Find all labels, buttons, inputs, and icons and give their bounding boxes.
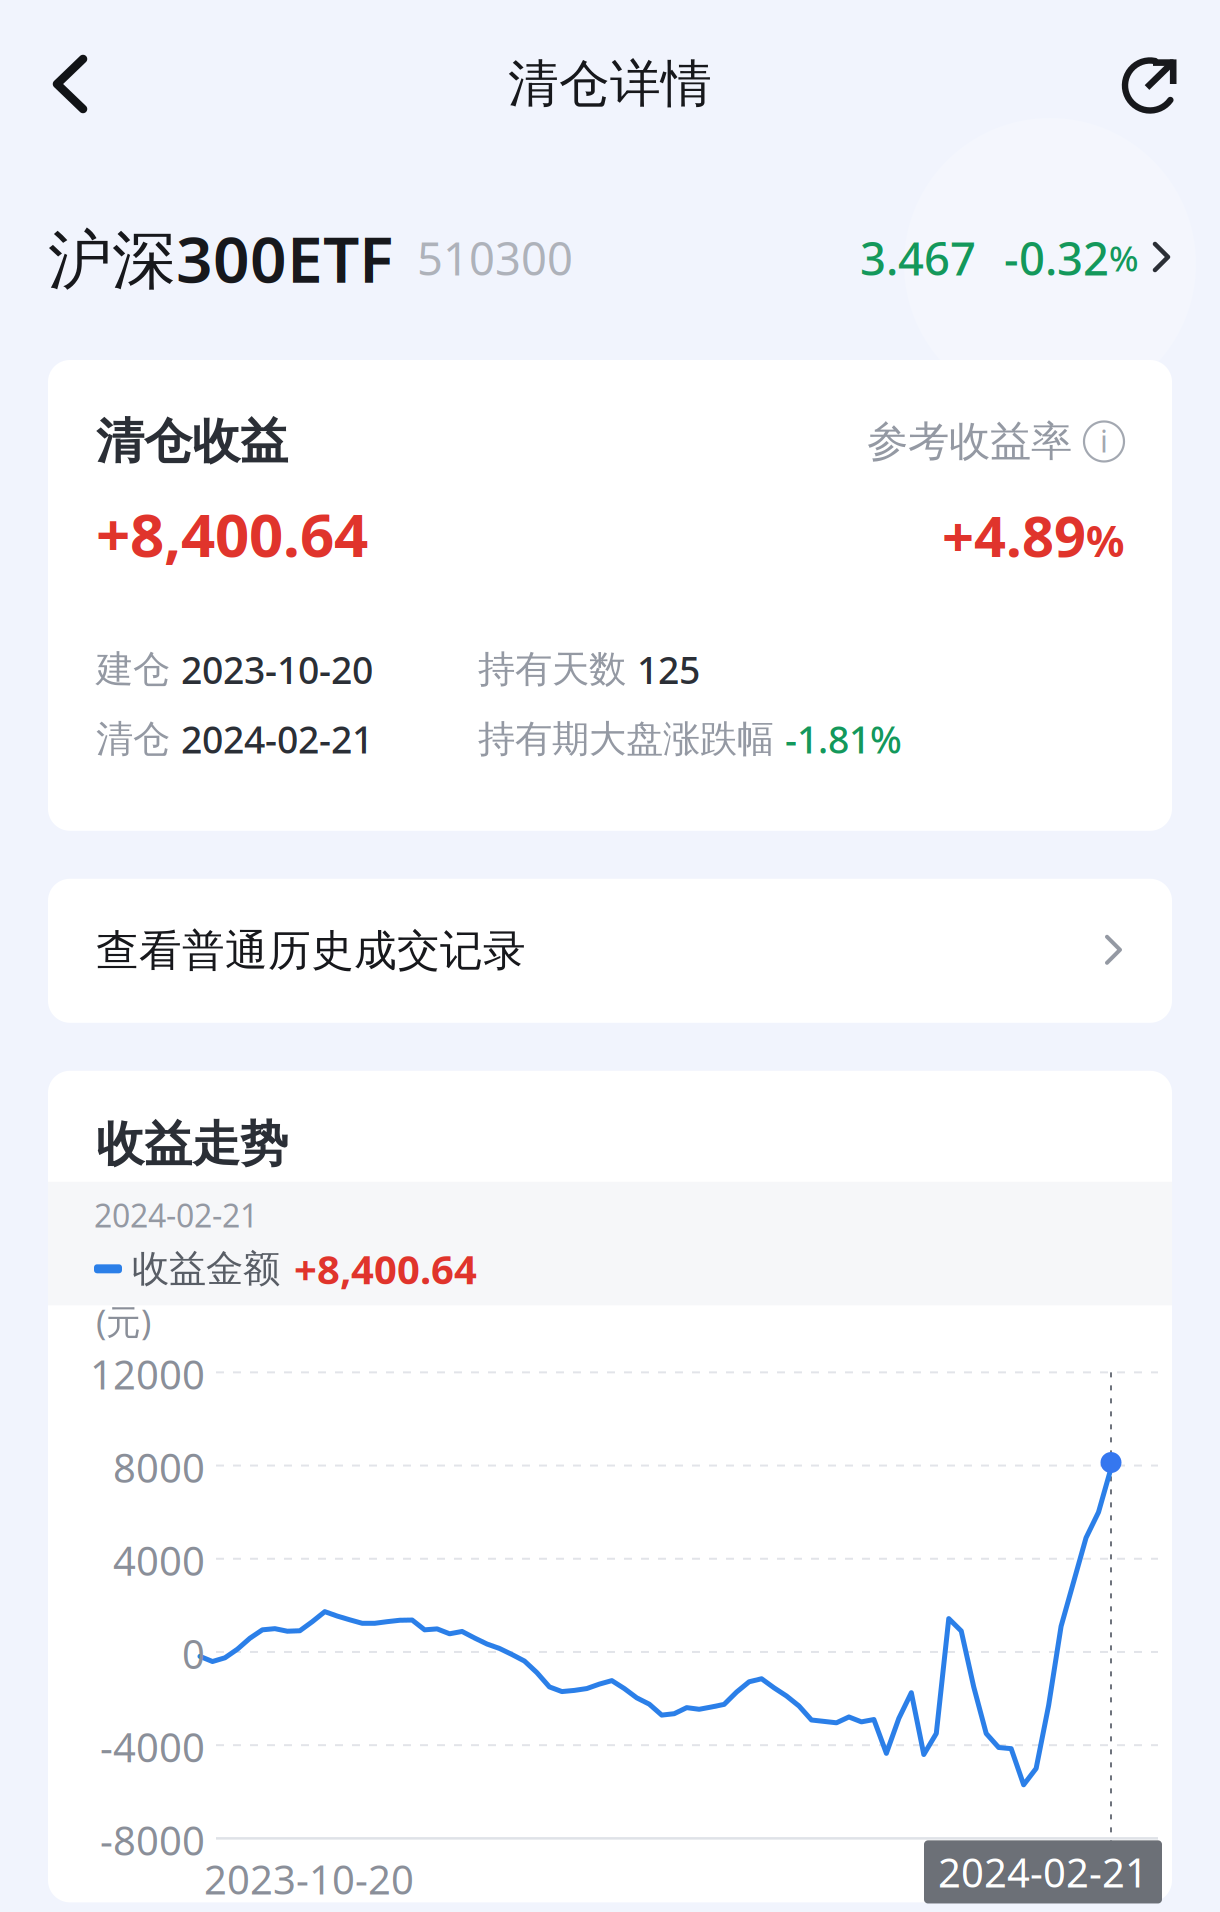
staticText: 清仓详情 — [508, 53, 712, 115]
staticText: -8000 — [100, 1813, 205, 1866]
staticText: i — [1100, 420, 1108, 461]
staticText: 4000 — [113, 1534, 205, 1587]
staticText: 2024-02-21 — [181, 714, 373, 764]
staticText: -1.81% — [785, 714, 902, 764]
staticText: +4.89 — [942, 498, 1086, 573]
staticText: 125 — [637, 645, 700, 694]
staticText: % — [1086, 512, 1124, 569]
staticText: 12000 — [90, 1347, 205, 1400]
staticText: -0.32 — [1004, 228, 1109, 288]
staticText: +8,400.64 — [96, 494, 368, 574]
staticText: 持有天数 — [478, 646, 637, 692]
staticText: 0 — [182, 1627, 205, 1680]
button[interactable]: Share — [1095, 36, 1220, 132]
staticText: 清仓 — [96, 716, 181, 762]
staticText: 查看普通历史成交记录 — [96, 925, 526, 977]
staticText: 建仓 — [96, 646, 181, 692]
staticText: 2024-02-21 — [94, 1194, 258, 1236]
staticText: 2023-10-20 — [181, 645, 373, 694]
staticText: (元) — [96, 1298, 151, 1344]
staticText: 清仓收益 — [96, 412, 288, 471]
staticText: 收益金额 — [132, 1246, 280, 1292]
staticText: 沪深300ETF — [48, 215, 393, 300]
staticText: 收益走势 — [96, 1115, 288, 1174]
staticText: 参考收益率 — [867, 416, 1072, 467]
staticText: % — [1109, 235, 1139, 281]
button[interactable]: Back — [0, 32, 115, 136]
staticText: -4000 — [100, 1720, 205, 1773]
staticText: 持有期大盘涨跌幅 — [478, 716, 785, 762]
staticText: 8000 — [113, 1441, 205, 1494]
button[interactable]: 沪深300ETF — [0, 168, 1220, 348]
staticText: 2023-10-20 — [204, 1852, 414, 1905]
staticText: 3.467 — [860, 228, 976, 288]
button[interactable]: 查看普通历史成交记录 — [0, 831, 1220, 1023]
staticText: +8,400.64 — [294, 1242, 477, 1295]
staticText: 2024-02-21 — [938, 1845, 1148, 1898]
staticText: 510300 — [417, 228, 573, 288]
